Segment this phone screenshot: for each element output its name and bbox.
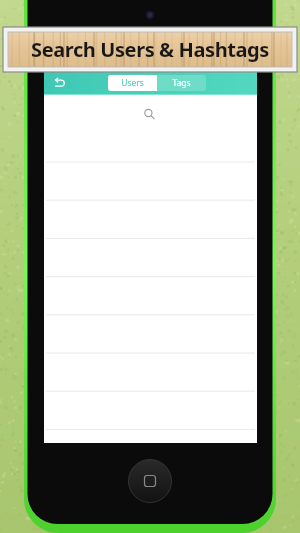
staticText: Tags [172,77,191,89]
button[interactable]: Tags [157,75,206,91]
button[interactable]: Users [108,75,157,91]
button[interactable] [44,238,257,276]
button[interactable] [44,428,257,443]
staticText: Search Users & Hashtags [31,36,269,63]
staticText: Users [121,77,144,89]
button[interactable]: Back [49,73,69,93]
button[interactable] [44,276,257,314]
